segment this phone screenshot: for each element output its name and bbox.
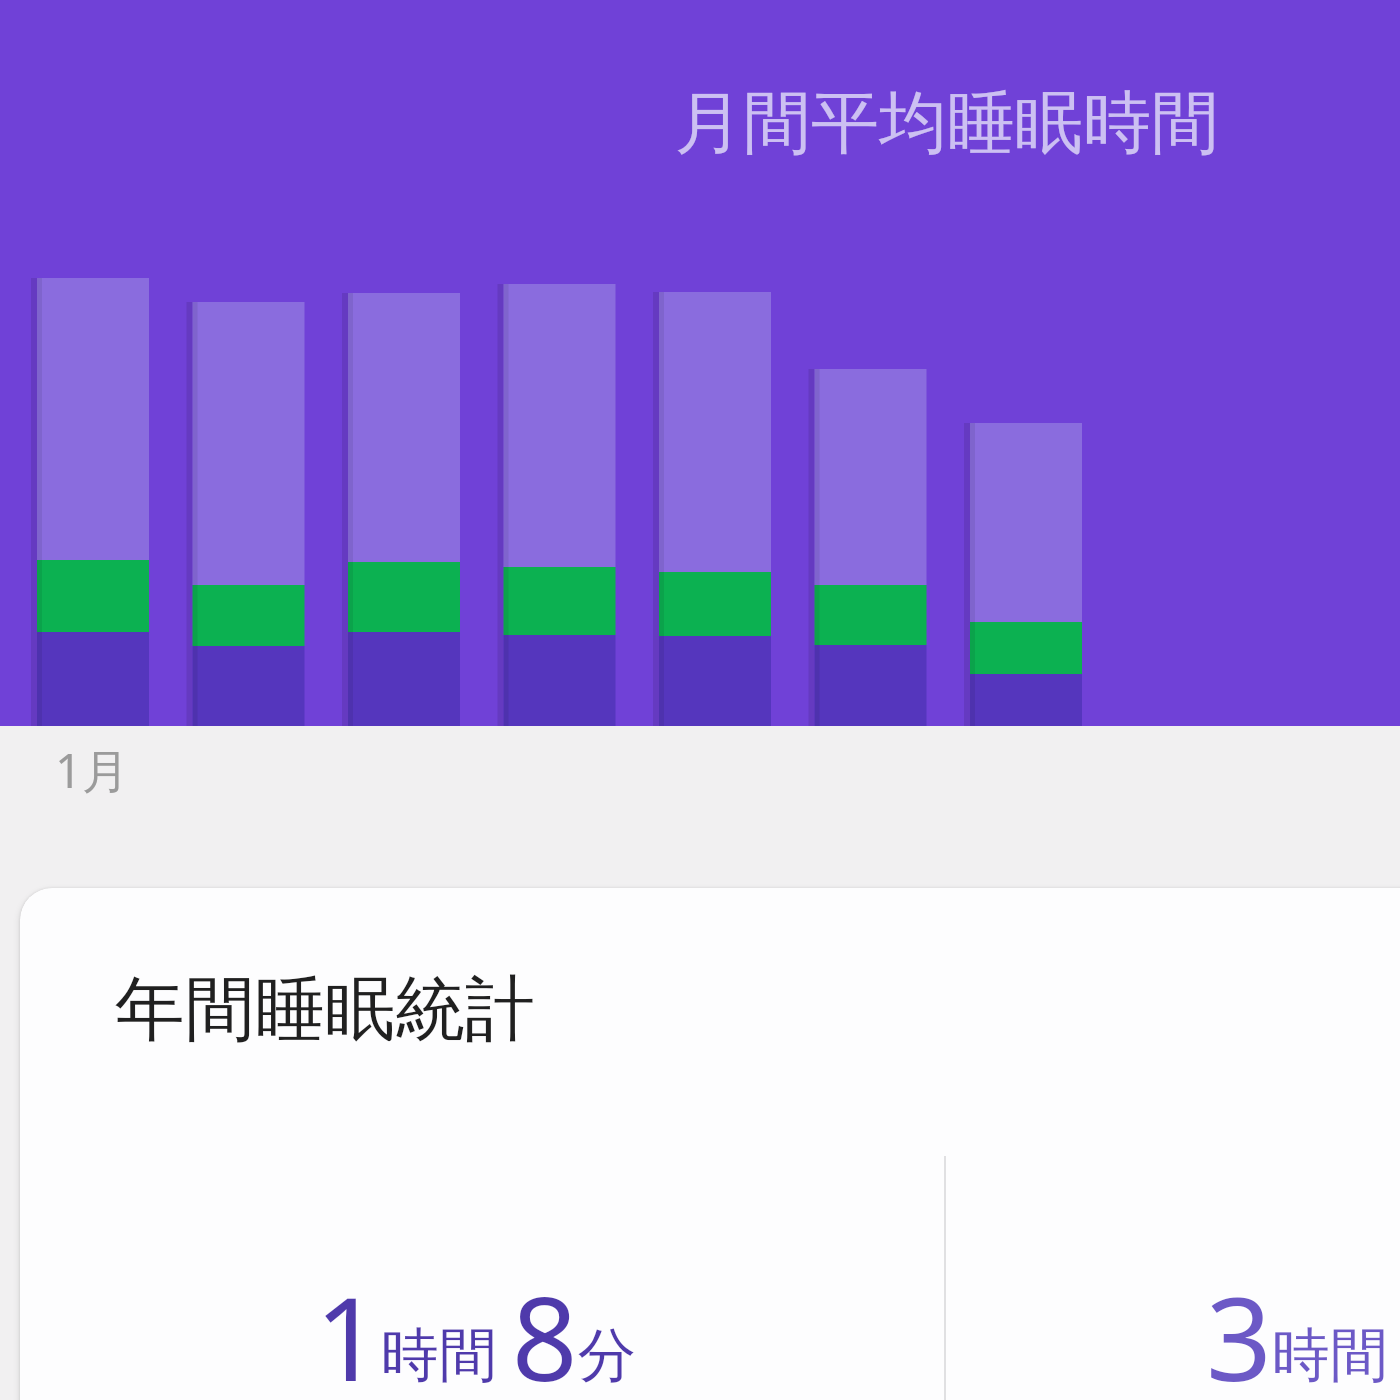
staticText: 年間睡眠統計 [115,966,535,1054]
staticText: 月間平均睡眠時間 [675,81,1219,167]
staticText: 3時間 [1206,1258,1388,1400]
button[interactable]: 年間睡眠統計 [20,888,1400,1400]
staticText: 1時間 8分 [315,1258,636,1400]
staticText: 1月 [55,738,129,802]
button[interactable]: 月間平均睡眠時間 [0,0,1400,726]
